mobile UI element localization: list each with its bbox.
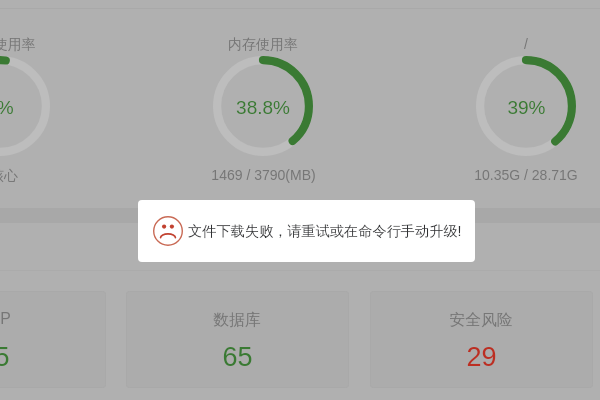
staticText: 安全风险 (449, 310, 513, 330)
staticText: 10.35G / 28.71G (474, 167, 578, 183)
staticText: PHP (0, 310, 11, 328)
staticText: 29 (466, 342, 497, 372)
staticText: CPU使用率 (0, 36, 36, 54)
staticText: 65 (222, 342, 253, 372)
staticText: 39% (507, 97, 546, 118)
button[interactable]: PHP (0, 291, 106, 388)
button[interactable]: 安全风险 (370, 291, 593, 388)
staticText: / (524, 36, 528, 52)
staticText: 4核心 (0, 167, 18, 185)
button[interactable]: 内存使用率 (213, 56, 313, 156)
staticText: 文件下载失败，请重试或在命令行手动升级! (188, 222, 462, 240)
staticText: 38.8% (236, 97, 290, 118)
staticText: 1469 / 3790(MB) (211, 167, 316, 183)
button[interactable]: Error (138, 200, 475, 262)
button[interactable]: CPU使用率 (0, 56, 50, 156)
staticText: 内存使用率 (228, 36, 298, 54)
button[interactable]: / (476, 56, 576, 156)
staticText: 2% (0, 97, 14, 118)
staticText: 65 (0, 342, 10, 372)
staticText: 数据库 (213, 310, 261, 330)
other: Error (153, 216, 183, 246)
button[interactable]: 数据库 (126, 291, 349, 388)
